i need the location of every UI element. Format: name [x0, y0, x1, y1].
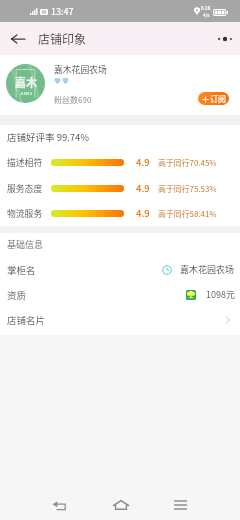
button[interactable]: Back	[0, 22, 35, 55]
staticText: 嘉木	[15, 74, 37, 90]
staticText: 掌柜名	[7, 263, 36, 277]
button[interactable]: 店铺名片	[0, 307, 240, 332]
staticText: 服务态度	[7, 182, 43, 195]
staticText: 高于同行70.45%	[158, 157, 217, 168]
staticText: 基础信息	[7, 238, 44, 251]
button[interactable]: 掌柜名	[0, 257, 240, 282]
staticText: 店铺印象	[38, 30, 87, 47]
staticText: 13:47	[51, 5, 74, 18]
button[interactable]: 资质	[0, 282, 240, 307]
staticText: 4.9	[136, 155, 150, 169]
staticText: 店铺名片	[7, 313, 46, 327]
staticText: 嘉木花园农场	[54, 63, 107, 76]
staticText: 0.2K	[201, 5, 211, 12]
staticText: 4.9	[136, 181, 150, 195]
staticText: 嘉木花园农场	[180, 263, 235, 276]
button[interactable]: Recent apps	[165, 492, 196, 517]
staticText: 4.9	[136, 206, 150, 220]
staticText: 物流服务	[7, 207, 43, 220]
staticText: 高于同行58.41%	[158, 208, 217, 219]
staticText: 订阅	[210, 93, 226, 105]
staticText: JIAMU	[20, 91, 33, 96]
button[interactable]: Home	[105, 492, 136, 517]
staticText: 粉丝数690	[54, 94, 92, 106]
staticText: 资质	[7, 288, 27, 302]
staticText: 1098元	[206, 288, 235, 301]
staticText: 店铺好评率 99.74%	[7, 130, 90, 144]
button[interactable]: Back	[44, 492, 75, 517]
staticText: 4/s	[203, 12, 210, 19]
staticText: 高于同行75.53%	[158, 183, 217, 194]
button[interactable]: More options	[210, 22, 240, 55]
staticText: 描述相符	[7, 156, 43, 169]
button[interactable]: 订阅	[198, 92, 229, 105]
